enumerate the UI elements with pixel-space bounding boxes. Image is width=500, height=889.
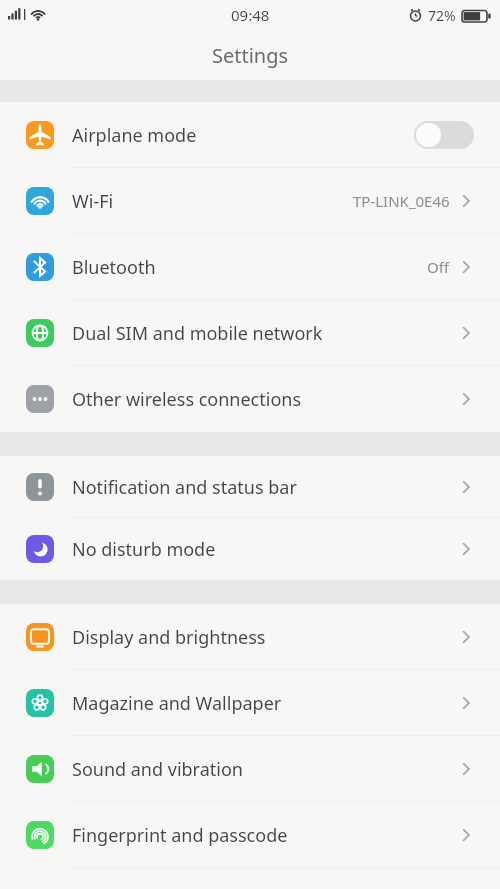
button[interactable]: Other wireless connections bbox=[0, 366, 500, 432]
staticText: 72% bbox=[428, 6, 456, 25]
staticText: Dual SIM and mobile network bbox=[72, 321, 323, 346]
button[interactable]: No disturb mode bbox=[0, 518, 500, 580]
button[interactable]: Notification and status bar bbox=[0, 456, 500, 518]
button[interactable]: Magazine and Wallpaper bbox=[0, 670, 500, 736]
staticText: TP-LINK_0E46 bbox=[353, 191, 450, 211]
button[interactable]: Display and brightness bbox=[0, 604, 500, 670]
button[interactable]: Fingerprint and passcode bbox=[0, 802, 500, 868]
button[interactable]: Sound and vibration bbox=[0, 736, 500, 802]
staticText: Other wireless connections bbox=[72, 387, 302, 412]
staticText: Airplane mode bbox=[72, 123, 197, 148]
staticText: Magazine and Wallpaper bbox=[72, 691, 282, 716]
button[interactable] bbox=[414, 121, 474, 149]
staticText: Display and brightness bbox=[72, 625, 266, 650]
staticText: No disturb mode bbox=[72, 537, 216, 562]
button[interactable]: Bluetooth bbox=[0, 234, 500, 300]
staticText: Wi-Fi bbox=[72, 189, 114, 214]
button[interactable]: Dual SIM and mobile network bbox=[0, 300, 500, 366]
staticText: Off bbox=[427, 257, 450, 277]
staticText: Notification and status bar bbox=[72, 475, 297, 500]
staticText: 09:48 bbox=[231, 5, 270, 25]
staticText: Settings bbox=[212, 42, 289, 69]
button[interactable]: Wi-Fi bbox=[0, 168, 500, 234]
staticText: Sound and vibration bbox=[72, 757, 243, 782]
button[interactable]: Airplane mode bbox=[0, 102, 500, 168]
staticText: Bluetooth bbox=[72, 255, 156, 280]
staticText: Fingerprint and passcode bbox=[72, 823, 288, 848]
